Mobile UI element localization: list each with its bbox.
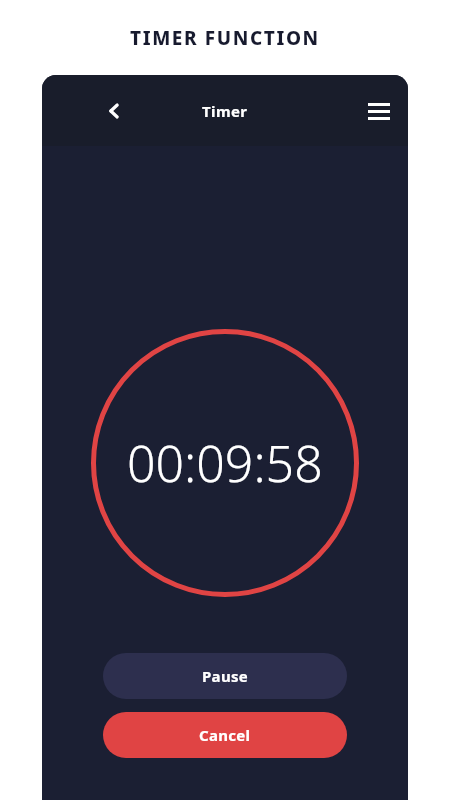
staticText: Timer: [202, 101, 248, 121]
button[interactable]: Back: [92, 89, 136, 133]
staticText: TIMER FUNCTION: [130, 25, 320, 51]
staticText: Cancel: [199, 725, 251, 745]
button[interactable]: Pause: [103, 653, 347, 699]
button[interactable]: Menu: [357, 89, 401, 133]
button[interactable]: Cancel: [103, 712, 347, 758]
staticText: 00:09:58: [127, 429, 323, 497]
staticText: Pause: [202, 666, 249, 686]
